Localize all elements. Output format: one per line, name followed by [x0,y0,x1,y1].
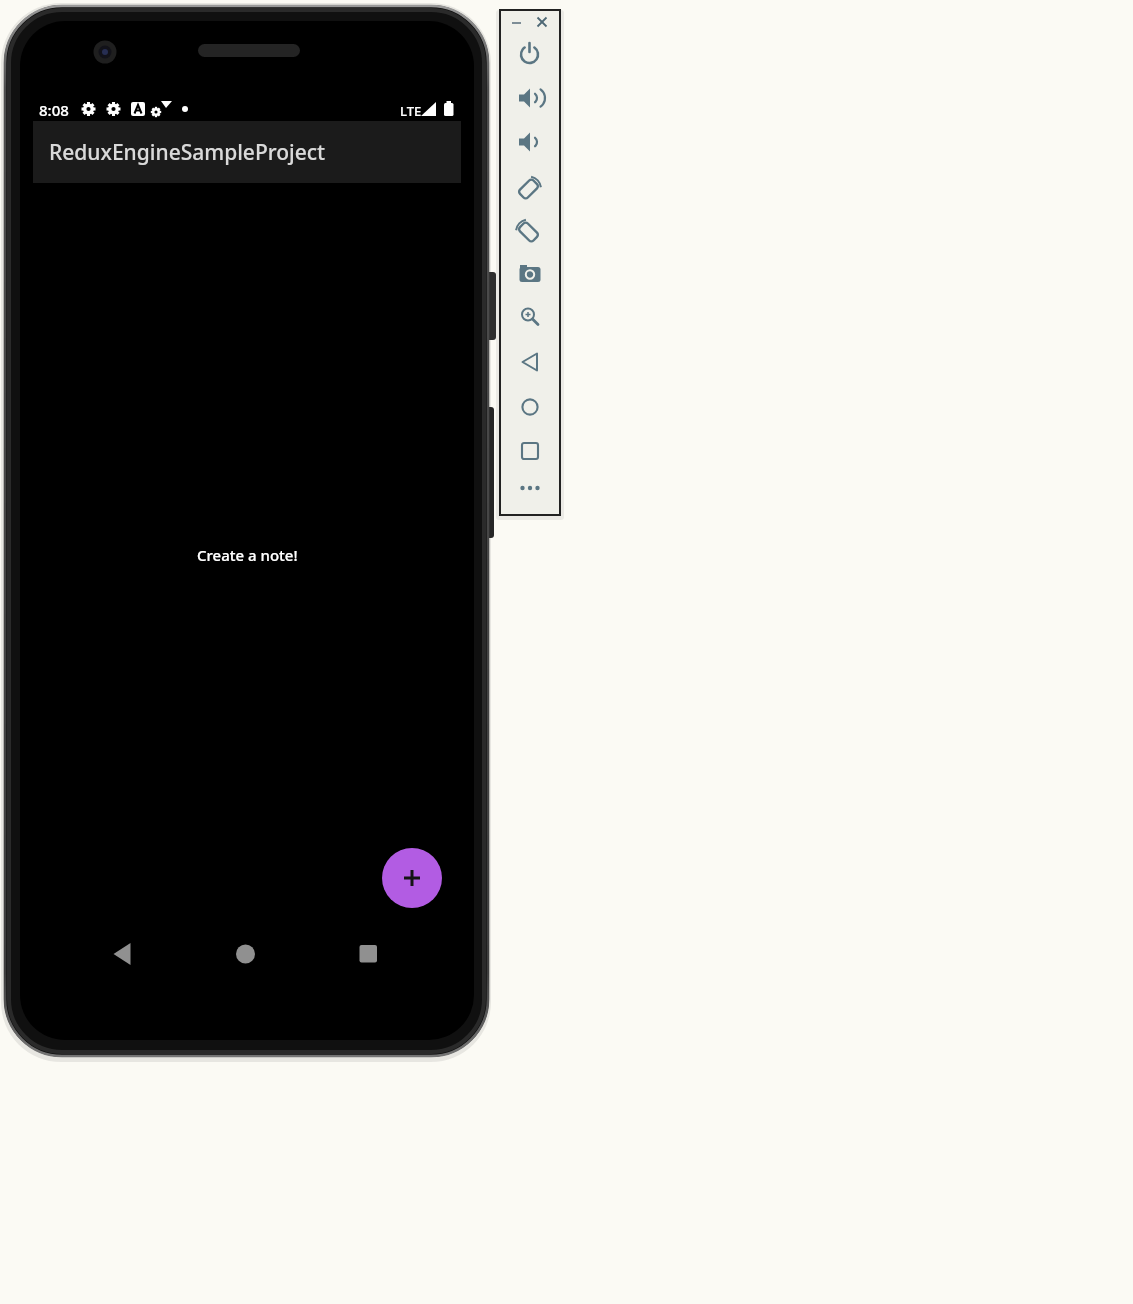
button[interactable] [515,83,545,113]
staticText: ReduxEngineSampleProject [49,138,326,167]
button[interactable] [509,15,525,29]
button[interactable] [515,392,545,422]
staticText: LTE [400,102,422,120]
button[interactable] [534,15,550,29]
button[interactable] [350,935,386,971]
button[interactable]: ReduxEngineSampleProject [33,121,461,183]
button[interactable] [515,347,545,377]
staticText: Create a note! [197,545,298,565]
button[interactable] [515,127,545,157]
staticText: 8:08 [39,100,69,120]
button[interactable] [515,172,545,202]
button[interactable] [515,215,545,245]
button[interactable] [227,935,263,971]
button[interactable] [515,258,545,288]
button[interactable] [515,302,545,332]
button[interactable] [515,473,545,503]
button[interactable] [515,436,545,466]
button[interactable] [105,935,141,971]
button[interactable] [382,848,442,908]
button[interactable] [515,39,545,69]
